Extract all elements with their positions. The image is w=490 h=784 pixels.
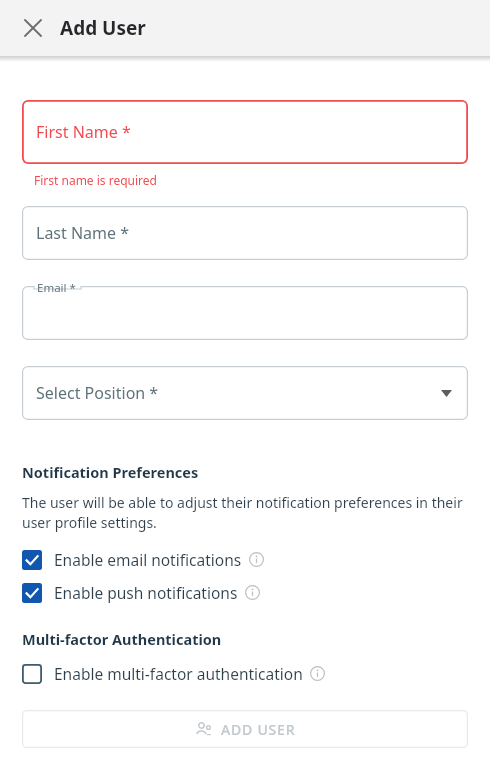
- staticText: The user will be able to adjust their no…: [22, 493, 468, 533]
- button[interactable]: Last Name *: [22, 206, 468, 260]
- button[interactable]: Enable multi-factor authentication: [22, 663, 468, 684]
- staticText: First Name *: [36, 121, 131, 143]
- other: More information: [245, 585, 260, 600]
- staticText: Enable push notifications: [54, 582, 238, 603]
- button[interactable]: Select Position *: [22, 366, 468, 420]
- staticText: Last Name *: [36, 222, 130, 244]
- staticText: First name is required: [34, 172, 157, 188]
- button[interactable]: Enable push notifications: [22, 582, 468, 603]
- staticText: Notification Preferences: [22, 462, 199, 482]
- staticText: ADD USER: [221, 720, 296, 739]
- button[interactable]: First Name *: [22, 100, 468, 164]
- other: More information: [310, 666, 325, 681]
- button[interactable]: Close: [14, 9, 52, 47]
- button[interactable]: Email *: [22, 286, 468, 340]
- staticText: Select Position *: [36, 382, 159, 404]
- staticText: Email *: [37, 280, 76, 296]
- staticText: Multi-factor Authentication: [22, 629, 222, 649]
- button[interactable]: Enable email notifications: [22, 549, 468, 570]
- button[interactable]: ADD USER: [22, 710, 468, 748]
- staticText: Add User: [60, 15, 146, 41]
- other: More information: [249, 552, 264, 567]
- staticText: Enable multi-factor authentication: [54, 663, 303, 684]
- staticText: Enable email notifications: [54, 549, 242, 570]
